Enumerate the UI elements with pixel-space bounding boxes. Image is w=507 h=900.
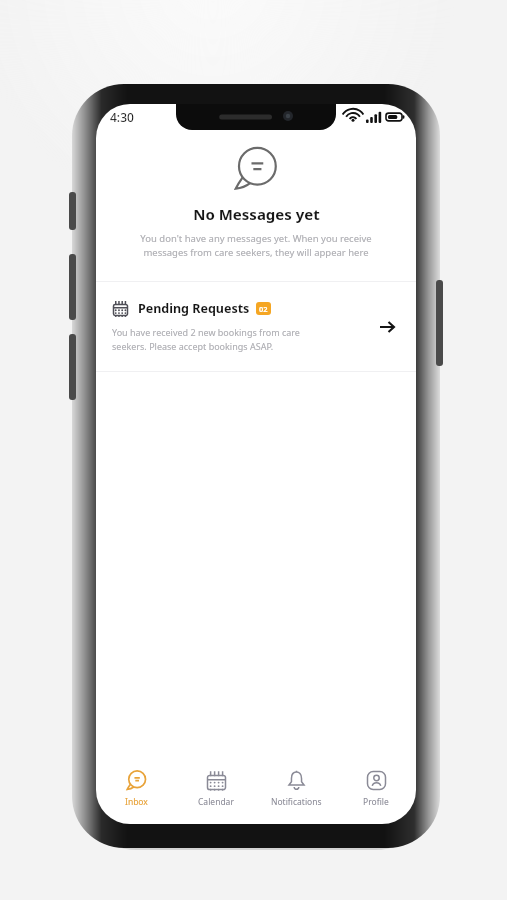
button[interactable]: Open pending requests <box>372 312 402 342</box>
button[interactable]: Notifications <box>256 766 336 812</box>
staticText: Pending Requests <box>138 300 250 317</box>
staticText: Calendar <box>198 796 234 808</box>
staticText: No Messages yet <box>193 204 320 224</box>
button[interactable]: Profile <box>336 766 416 812</box>
staticText: You have received 2 new bookings from ca… <box>112 326 330 353</box>
staticText: Profile <box>363 796 389 808</box>
staticText: Inbox <box>125 796 148 808</box>
staticText: Notifications <box>271 796 322 808</box>
staticText: 4:30 <box>110 109 134 125</box>
button[interactable]: Pending Requests <box>96 282 416 371</box>
button[interactable]: Inbox <box>96 766 176 812</box>
button[interactable]: Calendar <box>176 766 256 812</box>
staticText: You don't have any messages yet. When yo… <box>136 232 376 259</box>
staticText: 02 <box>259 304 268 314</box>
